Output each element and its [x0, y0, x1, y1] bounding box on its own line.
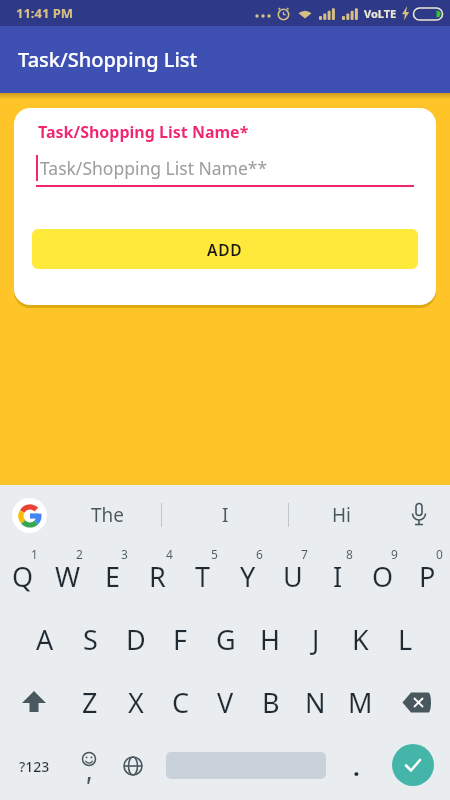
staticText: Z: [82, 684, 98, 721]
staticText: M: [348, 684, 373, 721]
staticText: 9: [391, 546, 398, 562]
button[interactable]: W: [45, 545, 90, 608]
button[interactable]: B: [248, 671, 293, 734]
button[interactable]: F: [158, 608, 203, 671]
button[interactable]: [392, 744, 434, 786]
button[interactable]: C: [158, 671, 203, 734]
staticText: Task/Shopping List Name**: [40, 156, 268, 180]
staticText: 4: [166, 546, 173, 562]
button[interactable]: A: [22, 608, 68, 671]
button[interactable]: K: [338, 608, 383, 671]
staticText: X: [128, 684, 144, 721]
staticText: N: [305, 684, 326, 721]
staticText: Hi: [332, 502, 351, 528]
button[interactable]: L: [383, 608, 428, 671]
staticText: Task/Shopping List Name*: [38, 121, 249, 143]
button[interactable]: M: [338, 671, 383, 734]
staticText: H: [260, 621, 281, 658]
button[interactable]: N: [293, 671, 338, 734]
button[interactable]: G: [203, 608, 248, 671]
staticText: C: [172, 684, 190, 721]
button[interactable]: [402, 498, 436, 532]
staticText: P: [419, 558, 436, 595]
button[interactable]: S: [68, 608, 113, 671]
button[interactable]: Z: [67, 671, 113, 734]
button[interactable]: [0, 671, 67, 734]
button[interactable]: [383, 671, 450, 734]
staticText: 2: [76, 546, 83, 562]
staticText: 6: [256, 546, 263, 562]
staticText: 5: [211, 546, 218, 562]
staticText: Y: [240, 558, 256, 595]
staticText: T: [195, 558, 211, 595]
staticText: O: [372, 558, 394, 595]
staticText: A: [36, 621, 54, 658]
staticText: G: [216, 621, 236, 658]
staticText: W: [55, 558, 81, 595]
button[interactable]: [12, 498, 47, 533]
staticText: E: [105, 558, 121, 595]
staticText: VoLTE: [364, 6, 397, 21]
staticText: 7: [301, 546, 308, 562]
staticText: L: [398, 621, 413, 658]
staticText: V: [217, 684, 234, 721]
button[interactable]: Hi: [290, 485, 392, 545]
button[interactable]: H: [248, 608, 293, 671]
staticText: I: [333, 558, 343, 595]
staticText: U: [283, 558, 303, 595]
button[interactable]: [70, 746, 108, 790]
staticText: ?123: [19, 757, 50, 776]
button[interactable]: .: [338, 749, 374, 783]
staticText: I: [222, 502, 229, 528]
staticText: 3: [121, 546, 128, 562]
button[interactable]: T: [180, 545, 225, 608]
button[interactable]: X: [113, 671, 158, 734]
staticText: The: [91, 502, 125, 528]
staticText: S: [83, 621, 98, 658]
button[interactable]: U: [270, 545, 315, 608]
button[interactable]: R: [135, 545, 180, 608]
button[interactable]: E: [90, 545, 135, 608]
staticText: Q: [12, 558, 34, 595]
button[interactable]: I: [315, 545, 360, 608]
staticText: K: [352, 621, 369, 658]
staticText: Task/Shopping List: [18, 46, 198, 73]
button[interactable]: J: [293, 608, 338, 671]
button[interactable]: ?123: [14, 749, 54, 783]
button[interactable]: Y: [225, 545, 270, 608]
staticText: ADD: [207, 239, 243, 260]
button[interactable]: I: [163, 485, 287, 545]
staticText: .: [353, 750, 360, 783]
button[interactable]: D: [113, 608, 158, 671]
staticText: 1: [31, 546, 38, 562]
staticText: 8: [346, 546, 353, 562]
button[interactable]: O: [360, 545, 405, 608]
staticText: D: [126, 621, 146, 658]
staticText: R: [149, 558, 166, 595]
button[interactable]: The: [58, 485, 158, 545]
staticText: J: [312, 621, 320, 658]
button[interactable]: Q: [0, 545, 45, 608]
staticText: B: [262, 684, 280, 721]
button[interactable]: P: [405, 545, 450, 608]
button[interactable]: [114, 749, 152, 783]
staticText: 0: [436, 546, 443, 562]
staticText: F: [173, 621, 188, 658]
button[interactable]: ADD: [32, 229, 418, 269]
button[interactable]: V: [203, 671, 248, 734]
staticText: 11:41 PM: [16, 4, 74, 22]
